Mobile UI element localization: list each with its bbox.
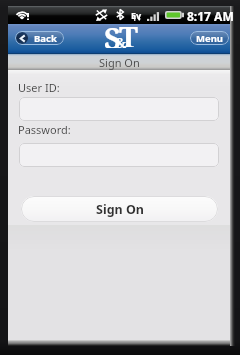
staticText: Password:: [18, 122, 71, 137]
staticText: Menu: [196, 32, 223, 45]
staticText: Ev: [131, 9, 142, 21]
staticText: S: [104, 18, 121, 48]
staticText: Sign On: [96, 201, 144, 218]
staticText: T: [119, 17, 138, 47]
button[interactable]: [19, 143, 219, 167]
button[interactable]: Menu: [190, 31, 229, 45]
staticText: User ID:: [18, 80, 60, 95]
staticText: Sign On: [99, 55, 140, 70]
button[interactable]: Sign On: [21, 196, 218, 222]
staticText: Back: [34, 32, 57, 45]
button[interactable]: [19, 97, 219, 121]
staticText: &: [115, 33, 127, 52]
button[interactable]: Back: [15, 31, 64, 45]
staticText: 8:17 AM: [187, 8, 234, 24]
